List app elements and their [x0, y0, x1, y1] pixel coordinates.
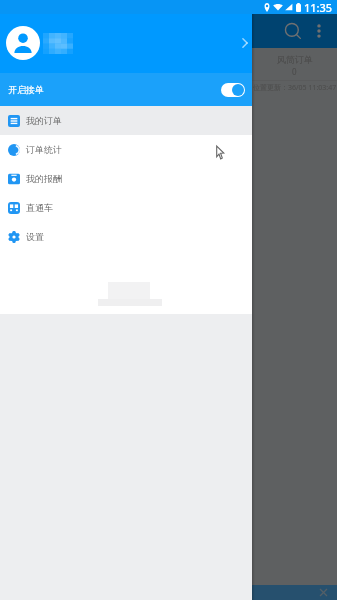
button[interactable]: 直通车 — [0, 193, 252, 222]
button[interactable]: Close — [317, 586, 330, 599]
staticText: 0 — [292, 66, 297, 77]
button[interactable]: More options — [306, 14, 331, 48]
button[interactable]: 开启接单 — [0, 73, 252, 106]
staticText: 开启接单 — [8, 84, 44, 95]
button[interactable]: Search — [280, 14, 306, 48]
staticText: 我的订单 — [26, 115, 62, 126]
staticText: 直通车 — [26, 202, 53, 213]
staticText: 我的报酬 — [26, 173, 62, 184]
staticText: 11:35 — [304, 0, 333, 14]
button[interactable]: 我的报酬 — [0, 164, 252, 193]
button[interactable]: 我的订单 — [0, 106, 252, 135]
staticText: 订单统计 — [26, 144, 62, 155]
button[interactable] — [6, 26, 248, 60]
button[interactable]: 订单统计 — [0, 135, 252, 164]
staticText: 风筒订单 — [277, 54, 313, 65]
staticText: 设置 — [26, 231, 44, 242]
button[interactable]: 设置 — [0, 222, 252, 251]
staticText: 位置更新：36/05 11:03:47 — [253, 83, 337, 93]
